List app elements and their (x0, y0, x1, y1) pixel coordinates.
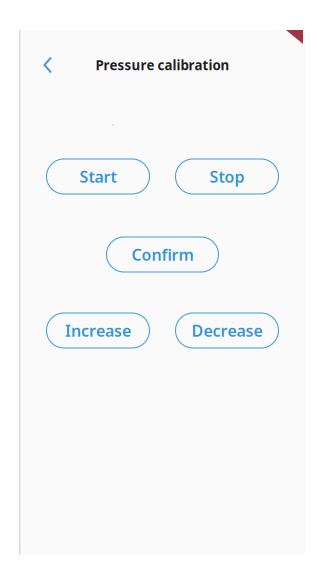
button[interactable]: Start (46, 159, 149, 194)
button[interactable]: Increase (46, 313, 149, 348)
staticText: Confirm (131, 244, 193, 265)
staticText: Stop (209, 166, 244, 187)
staticText: Start (79, 166, 116, 187)
staticText: Pressure calibration (95, 56, 229, 74)
button[interactable]: Back (20, 52, 76, 78)
staticText: Increase (65, 320, 131, 341)
button[interactable]: Stop (175, 159, 278, 194)
staticText: Decrease (191, 320, 262, 341)
button[interactable]: Decrease (175, 313, 278, 348)
button[interactable]: Confirm (106, 237, 218, 272)
